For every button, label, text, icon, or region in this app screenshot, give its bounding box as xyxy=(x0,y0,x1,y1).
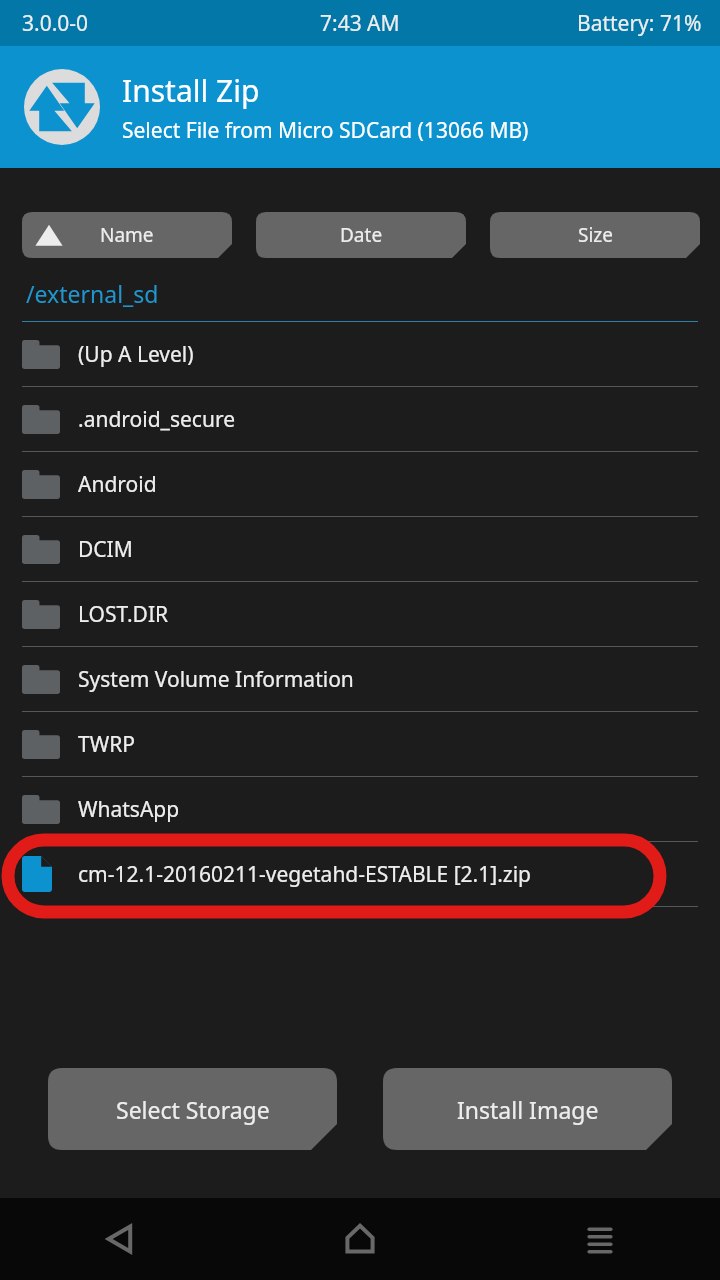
staticText: cm-12.1-20160211-vegetahd-ESTABLE [2.1].… xyxy=(78,860,531,889)
button[interactable]: Recent apps xyxy=(480,1198,720,1280)
staticText: 7:43 AM xyxy=(320,9,400,38)
button[interactable]: System Volume Information xyxy=(0,647,720,711)
button[interactable]: Date xyxy=(256,212,466,258)
staticText: 3.0.0-0 xyxy=(22,9,89,38)
staticText: /external_sd xyxy=(26,278,159,309)
staticText: DCIM xyxy=(78,535,133,564)
button[interactable]: cm-12.1-20160211-vegetahd-ESTABLE [2.1].… xyxy=(0,842,720,906)
staticText: TWRP xyxy=(78,730,135,759)
button[interactable]: Size xyxy=(490,212,700,258)
button[interactable]: DCIM xyxy=(0,517,720,581)
staticText: Select File from Micro SDCard (13066 MB) xyxy=(122,116,529,145)
staticText: LOST.DIR xyxy=(78,600,169,629)
button[interactable]: TWRP xyxy=(0,712,720,776)
button[interactable]: Android xyxy=(0,452,720,516)
button[interactable]: Select Storage xyxy=(48,1068,337,1150)
button[interactable]: WhatsApp xyxy=(0,777,720,841)
staticText: Date xyxy=(340,222,383,248)
button[interactable]: Install Image xyxy=(383,1068,672,1150)
button[interactable]: Name xyxy=(22,212,232,258)
button[interactable]: .android_secure xyxy=(0,387,720,451)
button[interactable]: Back xyxy=(0,1198,240,1280)
button[interactable]: Home xyxy=(240,1198,480,1280)
staticText: Install Image xyxy=(457,1094,599,1125)
staticText: Select Storage xyxy=(116,1094,270,1125)
staticText: .android_secure xyxy=(78,405,235,434)
button[interactable]: LOST.DIR xyxy=(0,582,720,646)
staticText: WhatsApp xyxy=(78,795,180,824)
staticText: Install Zip xyxy=(122,70,260,111)
staticText: System Volume Information xyxy=(78,665,354,694)
staticText: (Up A Level) xyxy=(78,340,194,369)
staticText: Battery: 71% xyxy=(577,9,702,38)
staticText: Size xyxy=(578,222,613,248)
button[interactable]: (Up A Level) xyxy=(0,322,720,386)
staticText: Android xyxy=(78,470,157,499)
staticText: Name xyxy=(100,222,154,248)
